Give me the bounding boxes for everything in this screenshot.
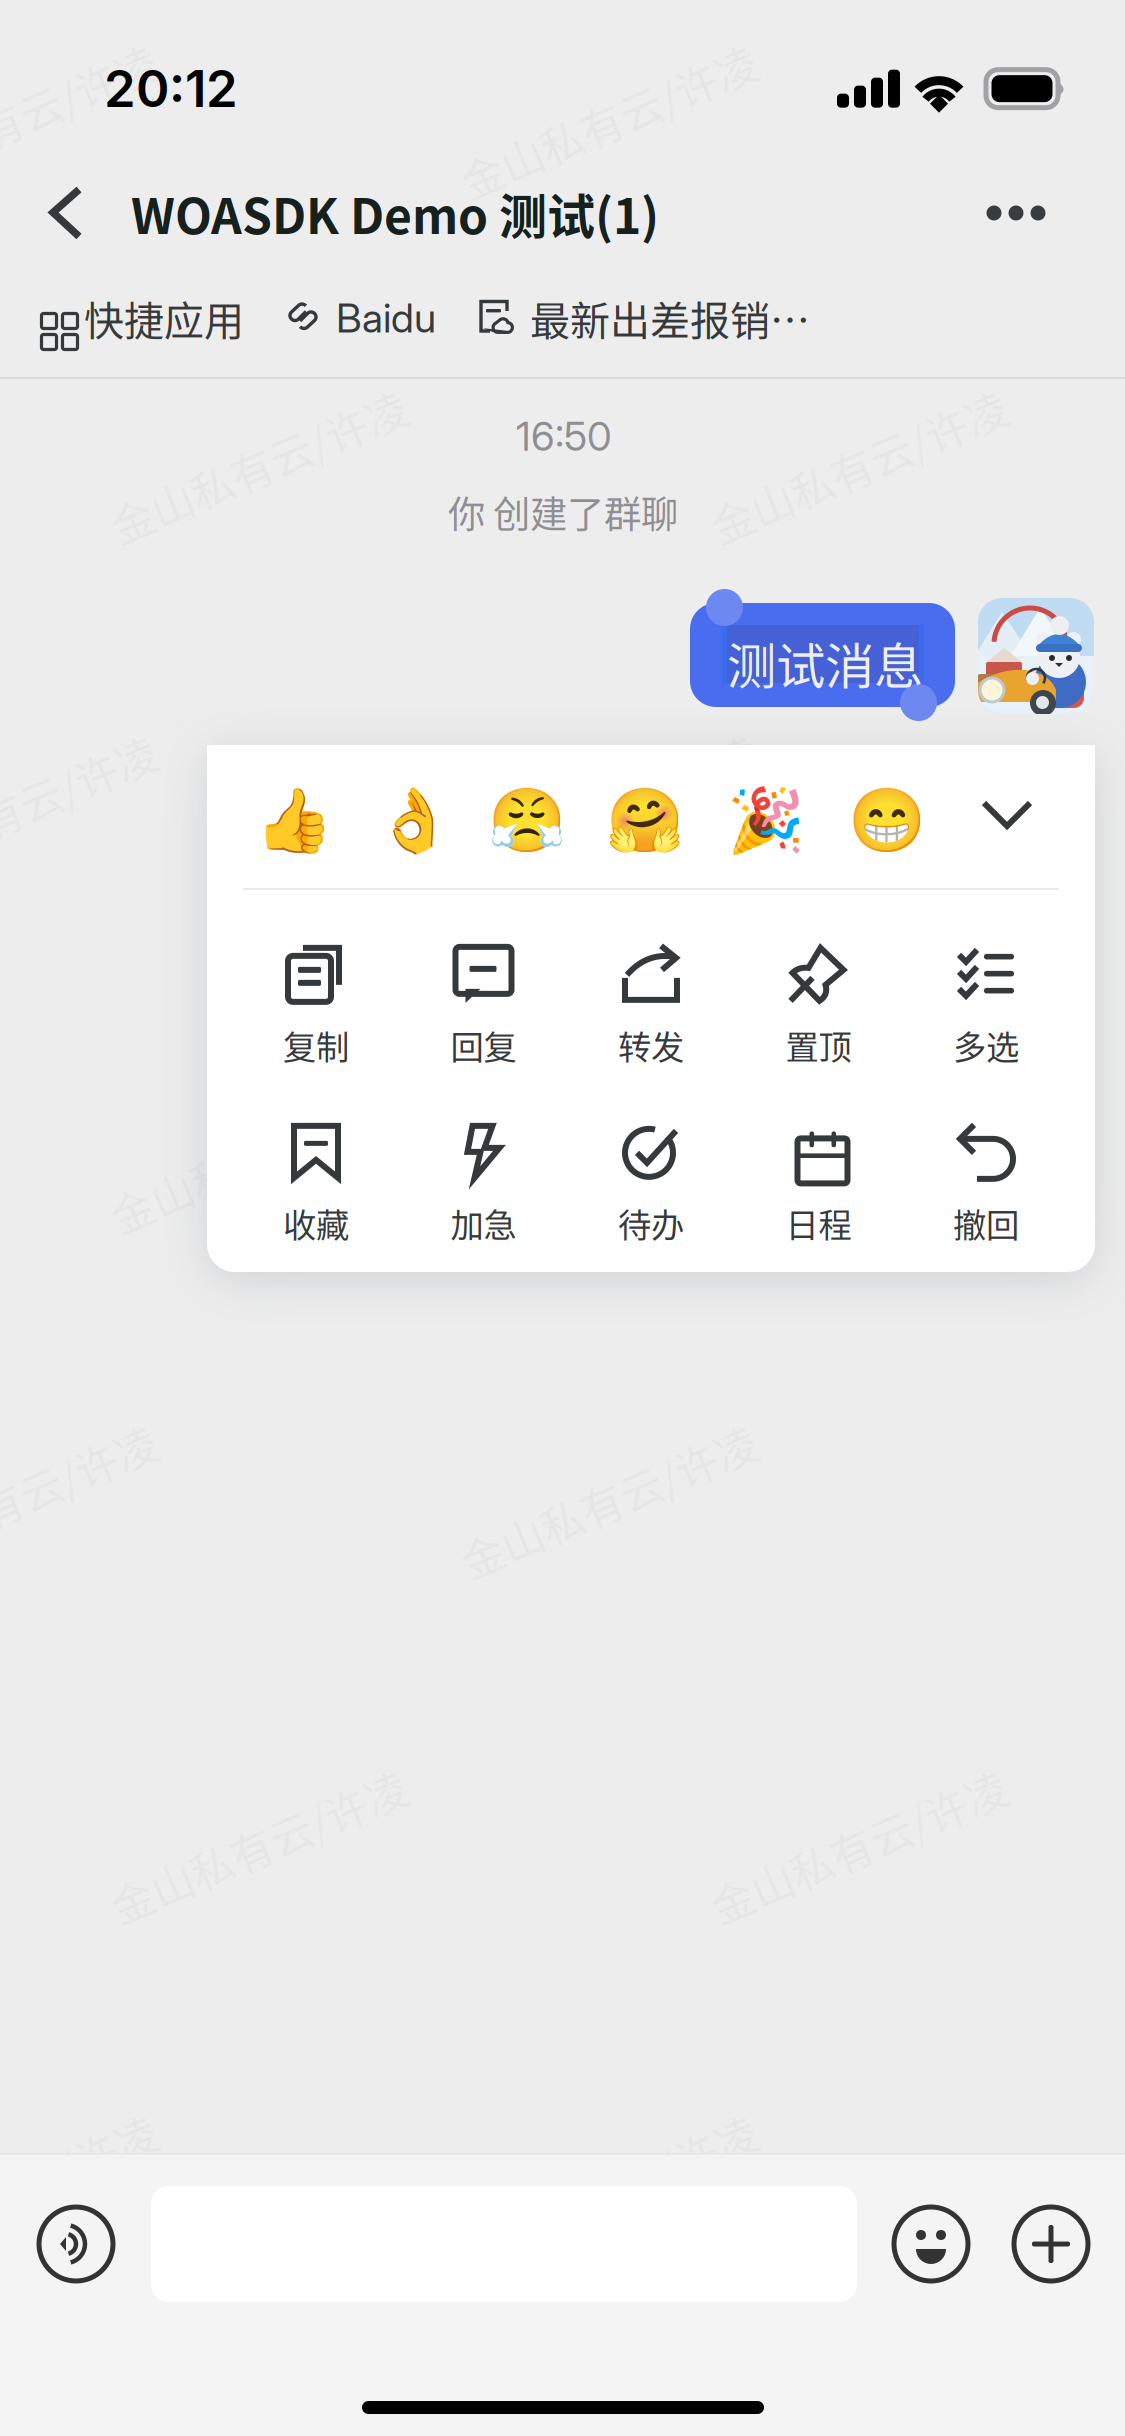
staticText: 待办: [618, 1199, 684, 1247]
staticText: 测试消息: [727, 627, 923, 698]
button[interactable]: 加急: [400, 1120, 567, 1250]
staticText: 快捷应用: [84, 289, 244, 347]
staticText: 金山私有云/许凌: [700, 1125, 1018, 1187]
button[interactable]: React thumbs up: [207, 745, 285, 818]
staticText: 日程: [785, 1199, 851, 1247]
staticText: 🤗: [606, 784, 684, 857]
button[interactable]: 多选: [902, 942, 1070, 1072]
staticText: 金山私有云/许凌: [450, 2160, 768, 2222]
staticText: 你 创建了群聊: [448, 485, 678, 539]
button[interactable]: React party: [207, 745, 285, 818]
button[interactable]: Voice message: [0, 2153, 74, 2227]
button[interactable]: More: [0, 2153, 74, 2227]
staticText: 多选: [953, 1021, 1019, 1069]
staticText: 加急: [450, 1199, 516, 1247]
button[interactable]: 复制: [232, 942, 400, 1072]
staticText: 20:12: [104, 58, 238, 119]
button[interactable]: 最新出差报销…: [478, 289, 810, 347]
button[interactable]: Back: [0, 155, 107, 271]
staticText: 收藏: [283, 1199, 349, 1247]
staticText: 🎉: [727, 784, 805, 857]
staticText: 金山私有云/许凌: [0, 90, 168, 152]
button[interactable]: React hug: [207, 745, 285, 818]
button[interactable]: React triumph: [207, 745, 285, 818]
staticText: Baidu: [336, 294, 436, 342]
staticText: 置顶: [785, 1021, 851, 1069]
staticText: 转发: [618, 1021, 684, 1069]
button[interactable]: 置顶: [735, 942, 902, 1072]
button[interactable]: 收藏: [232, 1120, 400, 1250]
staticText: 16:50: [516, 412, 612, 460]
button[interactable]: 日程: [735, 1120, 902, 1250]
staticText: 金山私有云/许凌: [450, 780, 768, 842]
button[interactable]: React OK: [207, 745, 285, 818]
staticText: 复制: [283, 1021, 349, 1069]
button[interactable]: 回复: [400, 942, 567, 1072]
button[interactable]: 撤回: [902, 1120, 1070, 1250]
staticText: 👍: [255, 784, 333, 857]
staticText: 最新出差报销…: [530, 289, 810, 347]
staticText: 回复: [450, 1021, 516, 1069]
staticText: 金山私有云/许凌: [0, 2160, 168, 2222]
staticText: WOASDK Demo 测试(1): [131, 178, 659, 248]
button[interactable]: More options: [946, 155, 1086, 271]
button[interactable]: 待办: [567, 1120, 735, 1250]
staticText: 😤: [488, 784, 566, 857]
button[interactable]: React grin: [207, 745, 285, 818]
button[interactable]: 快捷应用: [29, 289, 244, 347]
button[interactable]: Baidu: [284, 294, 436, 342]
staticText: 👌: [375, 784, 453, 857]
staticText: 金山私有云/许凌: [100, 1125, 418, 1187]
staticText: 😁: [848, 784, 926, 857]
staticText: 撤回: [953, 1199, 1019, 1247]
button[interactable]: Emoji: [0, 2153, 74, 2227]
button[interactable]: 转发: [567, 942, 735, 1072]
